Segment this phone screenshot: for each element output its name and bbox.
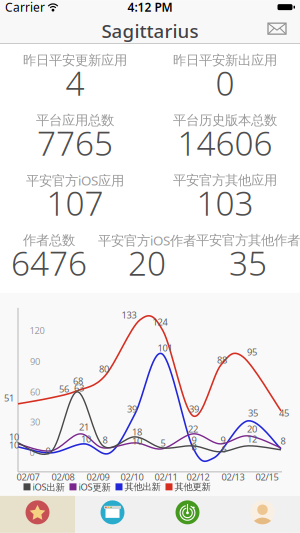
staticText: 4:12 PM — [127, 0, 172, 15]
staticText: 9 — [220, 434, 225, 446]
button[interactable]: Apps — [75, 496, 150, 533]
staticText: iOS出新 — [32, 481, 64, 493]
staticText: 0 — [215, 61, 234, 105]
staticText: 平台历史版本总数 — [173, 112, 277, 128]
staticText: 68 — [73, 375, 83, 387]
staticText: 21 — [79, 421, 89, 433]
staticText: 35 — [229, 241, 267, 285]
staticText: 平台应用总数 — [36, 112, 114, 128]
staticText: 平安官方iOS作者 — [98, 231, 196, 249]
staticText: 18 — [132, 426, 142, 438]
staticText: 7765 — [37, 121, 113, 165]
staticText: 51 — [4, 392, 14, 404]
staticText: 02/10 — [120, 471, 143, 483]
staticText: 02/11 — [154, 471, 177, 483]
staticText: 90 — [30, 355, 40, 368]
staticText: 39 — [189, 403, 199, 415]
staticText: 60 — [30, 386, 40, 398]
staticText: 0 — [45, 445, 50, 457]
staticText: 88 — [217, 354, 227, 366]
staticText: 昨日平安更新应用 — [23, 52, 127, 68]
staticText: 10 — [81, 433, 91, 445]
staticText: 其他出新 — [124, 481, 160, 493]
staticText: 8 — [280, 435, 285, 447]
staticText: 其他更新 — [174, 481, 210, 493]
staticText: 9 — [191, 434, 196, 446]
staticText: 5 — [160, 437, 165, 449]
staticText: Carrier — [5, 0, 45, 15]
staticText: 平安官方其他作者 — [196, 232, 300, 248]
staticText: 133 — [121, 309, 136, 321]
staticText: 22 — [188, 423, 198, 435]
staticText: 120 — [29, 324, 44, 337]
staticText: 20 — [128, 241, 166, 285]
button[interactable]: Favorites — [0, 496, 75, 533]
button[interactable]: Profile — [225, 496, 300, 533]
staticText: 45 — [279, 407, 289, 419]
staticText: 30 — [30, 416, 40, 428]
staticText: 10 — [9, 431, 19, 443]
staticText: Sagittarius — [101, 18, 198, 43]
staticText: 56 — [59, 383, 69, 395]
staticText: 6 — [221, 443, 226, 455]
staticText: 63 — [74, 382, 84, 394]
button[interactable]: Radar — [150, 496, 225, 533]
staticText: 0 — [29, 446, 34, 459]
staticText: 107 — [46, 181, 103, 225]
staticText: 14606 — [177, 121, 272, 165]
staticText: 02/13 — [221, 471, 244, 483]
staticText: 8 — [102, 434, 107, 446]
staticText: 02/07 — [16, 471, 39, 483]
staticText: 02/12 — [186, 471, 209, 483]
staticText: 作者总数 — [23, 232, 75, 248]
staticText: 12 — [247, 433, 257, 445]
staticText: 80 — [99, 363, 109, 375]
staticText: 39 — [127, 403, 137, 415]
staticText: 20 — [247, 423, 257, 435]
staticText: 4 — [65, 61, 84, 105]
staticText: 02/09 — [86, 471, 109, 483]
staticText: 101 — [157, 342, 172, 354]
staticText: 95 — [247, 346, 257, 358]
staticText: 6476 — [11, 241, 87, 285]
staticText: 124 — [152, 316, 167, 328]
staticText: 02/15 — [255, 471, 278, 483]
staticText: 10 — [9, 439, 19, 451]
staticText: 103 — [196, 181, 253, 225]
staticText: 8 — [191, 441, 196, 453]
staticText: iOS更新 — [78, 481, 110, 493]
staticText: 平安官方其他应用 — [173, 172, 277, 188]
button[interactable]: Mail — [262, 14, 292, 43]
staticText: 昨日平安新出应用 — [173, 52, 277, 68]
staticText: 02/08 — [51, 471, 74, 483]
staticText: 10 — [132, 435, 142, 447]
staticText: 35 — [248, 407, 258, 419]
staticText: 平安官方iOS应用 — [26, 171, 124, 189]
